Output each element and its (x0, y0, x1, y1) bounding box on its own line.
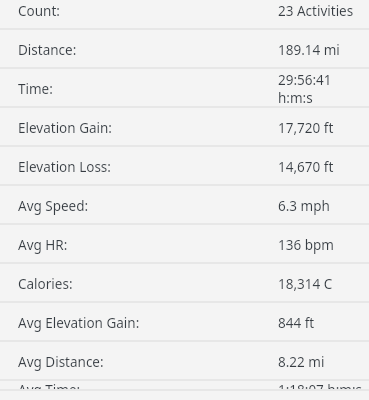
button[interactable]: Avg Elevation Gain: (0, 303, 369, 342)
button[interactable]: Avg Speed: (0, 186, 369, 225)
staticText: Elevation Loss: (18, 158, 111, 176)
staticText: Count: (18, 2, 60, 20)
staticText: Calories: (18, 275, 73, 293)
staticText: Avg HR: (18, 236, 68, 254)
staticText: 844 ft (278, 314, 315, 332)
button[interactable]: Time: (0, 69, 369, 108)
staticText: 8.22 mi (278, 353, 325, 371)
button[interactable]: Count: (0, 0, 369, 30)
button[interactable]: Avg Distance: (0, 342, 369, 381)
staticText: 6.3 mph (278, 197, 330, 215)
staticText: Time: (18, 80, 53, 98)
staticText: 18,314 C (278, 275, 333, 293)
button[interactable]: Avg HR: (0, 225, 369, 264)
staticText: Avg Elevation Gain: (18, 314, 140, 332)
staticText: Elevation Gain: (18, 119, 112, 137)
staticText: Avg Time: (18, 381, 81, 391)
staticText: Avg Distance: (18, 353, 104, 371)
button[interactable]: Avg Time: (0, 381, 369, 391)
button[interactable]: Elevation Loss: (0, 147, 369, 186)
button[interactable]: Calories: (0, 264, 369, 303)
staticText: 136 bpm (278, 236, 334, 254)
staticText: Avg Speed: (18, 197, 89, 215)
staticText: 14,670 ft (278, 158, 334, 176)
button[interactable]: Distance: (0, 30, 369, 69)
button[interactable]: Elevation Gain: (0, 108, 369, 147)
staticText: 23 Activities (278, 2, 354, 20)
staticText: 1:18:07 h:m:s (278, 381, 363, 391)
staticText: 17,720 ft (278, 119, 334, 137)
staticText: 189.14 mi (278, 41, 340, 59)
staticText: Distance: (18, 41, 77, 59)
staticText: 29:56:41 h:m:s (278, 71, 369, 107)
